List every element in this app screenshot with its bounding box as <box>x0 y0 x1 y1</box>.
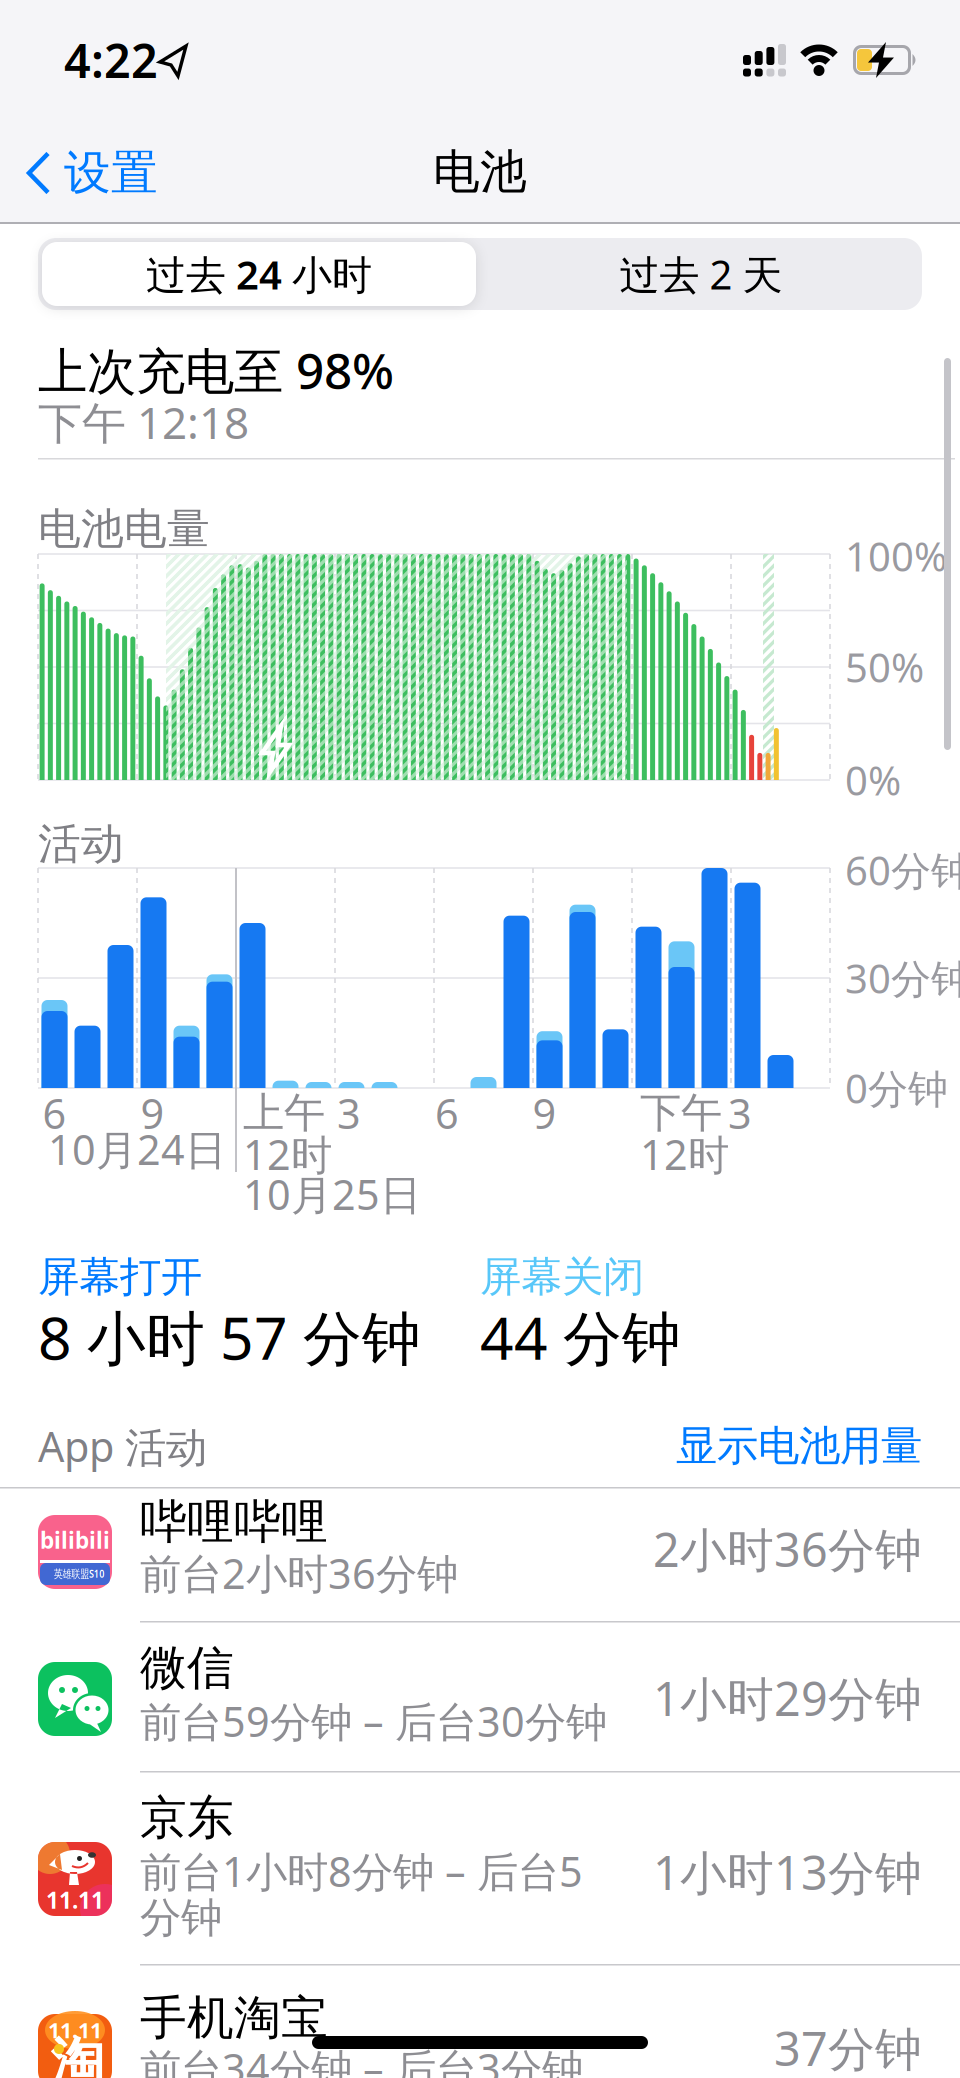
button[interactable]: 过去 24 小时 <box>42 242 476 306</box>
staticText: 60分钟 <box>845 843 960 896</box>
staticText: 哔哩哔哩 <box>140 1493 328 1551</box>
staticText: 前台59分钟 – 后台30分钟 <box>140 1694 607 1748</box>
staticText: 6 <box>42 1086 66 1140</box>
staticText: 37分钟 <box>774 2017 922 2078</box>
staticText: 1小时13分钟 <box>653 1841 922 1903</box>
staticText: 微信 <box>140 1639 234 1697</box>
staticText: 屏幕关闭 <box>480 1252 644 1302</box>
staticText: 过去 2 天 <box>619 247 782 300</box>
staticText: 电池电量 <box>38 503 210 555</box>
staticText: bilibili <box>40 1525 110 1555</box>
staticText: 11.11 <box>46 1885 104 1915</box>
staticText: 50% <box>845 640 924 693</box>
staticText: 3 <box>337 1086 361 1140</box>
staticText: 过去 24 小时 <box>146 247 372 300</box>
staticText: 6 <box>435 1086 459 1140</box>
staticText: App 活动 <box>38 1418 207 1473</box>
staticText: 前台2小时36分钟 <box>140 1546 458 1600</box>
staticText: 手机淘宝 <box>140 1989 328 2047</box>
staticText: 电池 <box>433 143 527 201</box>
staticText: 前台1小时8分钟 – 后台5 <box>140 1844 583 1898</box>
staticText: 3 <box>728 1086 752 1140</box>
staticText: 分钟 <box>140 1893 222 1943</box>
staticText: 英雄联盟S10 <box>37 1565 112 1583</box>
staticText: 上次充电至 98% <box>38 337 394 403</box>
staticText: 12时 <box>243 1127 332 1181</box>
staticText: 下午 12:18 <box>38 393 249 451</box>
staticText: 44 分钟 <box>480 1298 681 1376</box>
button[interactable]: 过去 2 天 <box>486 242 916 306</box>
staticText: 活动 <box>38 818 124 870</box>
staticText: 1小时29分钟 <box>653 1667 922 1729</box>
button[interactable]: bilibili <box>0 1488 960 1622</box>
button[interactable]: 显示电池用量 <box>602 1423 922 1469</box>
staticText: 11.11 <box>48 2016 102 2044</box>
staticText: 9 <box>532 1086 556 1140</box>
staticText: 京东 <box>140 1789 234 1847</box>
staticText: 9 <box>140 1086 164 1140</box>
staticText: 前台34分钟 – 后台3分钟 <box>140 2041 583 2078</box>
staticText: 10月24日 <box>48 1122 226 1176</box>
staticText: 100% <box>845 529 947 582</box>
staticText: 上午 <box>243 1088 325 1138</box>
staticText: 12时 <box>640 1127 729 1181</box>
staticText: 下午 <box>640 1088 722 1138</box>
staticText: 10月25日 <box>243 1167 421 1221</box>
button[interactable]: 11.11 <box>0 1965 960 2078</box>
staticText: 4:22 <box>64 29 158 91</box>
staticText: 0分钟 <box>845 1061 948 1114</box>
staticText: 8 小时 57 分钟 <box>38 1298 421 1376</box>
staticText: 淘 <box>50 2030 103 2078</box>
button[interactable]: 11.11 <box>0 1772 960 1965</box>
staticText: 2小时36分钟 <box>653 1518 922 1580</box>
button[interactable]: 微信 <box>0 1622 960 1772</box>
button[interactable]: 设置 <box>24 143 194 203</box>
staticText: 显示电池用量 <box>676 1421 922 1471</box>
staticText: 屏幕打开 <box>38 1252 202 1302</box>
staticText: 30分钟 <box>845 951 960 1004</box>
staticText: 0% <box>845 753 901 806</box>
staticText: 设置 <box>64 144 158 202</box>
